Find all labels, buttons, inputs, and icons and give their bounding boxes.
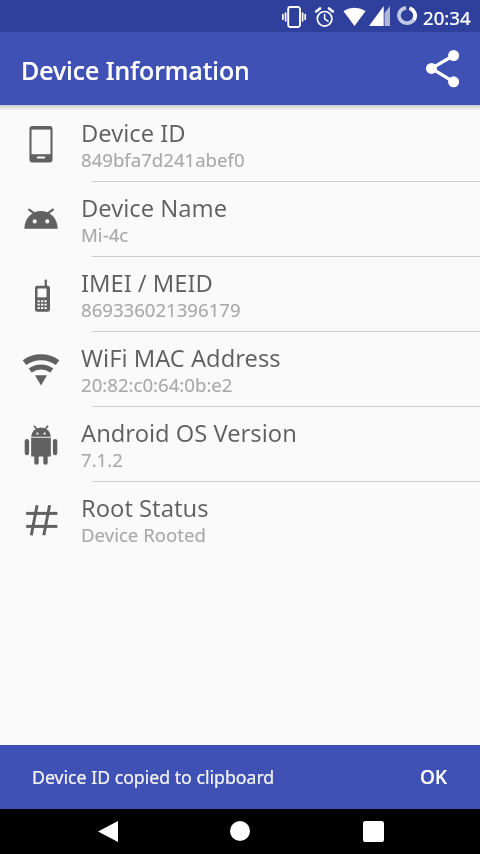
button[interactable]: Recents [351,809,395,853]
staticText: Device Name [81,192,228,224]
button[interactable]: WiFi MAC Address [0,332,480,407]
staticText: 20:82:c0:64:0b:e2 [81,372,233,397]
staticText: Device Information [21,53,250,87]
staticText: 849bfa7d241abef0 [81,147,245,172]
staticText: 869336021396179 [81,297,241,322]
staticText: WiFi MAC Address [81,342,281,374]
button[interactable]: Device Name [0,182,480,257]
staticText: Android OS Version [81,417,297,449]
staticText: 7.1.2 [81,447,123,472]
staticText: Mi-4c [81,222,129,247]
button[interactable]: Share [417,43,469,95]
button[interactable]: Root Status [0,482,480,557]
button[interactable]: Back [86,809,130,853]
button[interactable]: Device ID [0,107,480,182]
button[interactable]: Home [218,809,262,853]
button[interactable]: Android OS Version [0,407,480,482]
staticText: 20:34 [423,5,471,30]
staticText: OK [420,764,447,790]
staticText: IMEI / MEID [81,267,213,299]
staticText: Device ID copied to clipboard [32,765,275,789]
staticText: Device ID [81,117,186,149]
staticText: Root Status [81,492,209,524]
button[interactable]: IMEI / MEID [0,257,480,332]
button[interactable]: OK [399,754,468,800]
staticText: Device Rooted [81,522,206,547]
